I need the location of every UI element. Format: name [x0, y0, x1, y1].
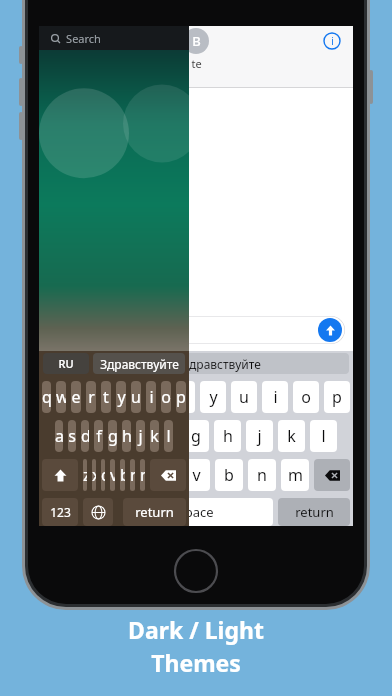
button[interactable]: Change keyboard	[83, 498, 113, 526]
button[interactable]: Здравствуйте	[93, 353, 185, 374]
staticText: 123	[50, 504, 71, 520]
button[interactable]: a	[55, 420, 63, 452]
staticText: Здравствуйте	[100, 356, 179, 372]
button[interactable]: z	[83, 459, 87, 491]
staticText: i	[273, 386, 278, 408]
button[interactable]: b	[120, 459, 125, 491]
staticText: f	[161, 425, 167, 447]
button[interactable]: RU	[43, 353, 89, 374]
button[interactable]: a	[55, 420, 81, 452]
button[interactable]: g	[182, 420, 209, 452]
button[interactable]: m	[140, 459, 145, 491]
button[interactable]: u	[131, 381, 141, 413]
button[interactable]: k	[278, 420, 305, 452]
button[interactable]: space	[118, 498, 273, 526]
button[interactable]: n	[130, 459, 135, 491]
staticText: m	[288, 464, 303, 486]
button[interactable]: l	[164, 420, 173, 452]
button[interactable]: 123	[42, 498, 78, 526]
button[interactable]: Здравствуйте	[93, 353, 349, 374]
button[interactable]: n	[248, 459, 276, 491]
staticText: RU	[58, 356, 74, 371]
button[interactable]: p	[176, 381, 186, 413]
button[interactable]: d	[118, 420, 145, 452]
button[interactable]: p	[324, 381, 350, 413]
button[interactable]: o	[293, 381, 319, 413]
button[interactable]: c	[149, 459, 177, 491]
button[interactable]: 123	[42, 498, 78, 526]
staticText: o	[301, 386, 311, 408]
button[interactable]: y	[116, 381, 126, 413]
button[interactable]: d	[81, 420, 89, 452]
button[interactable]: Send	[318, 318, 342, 342]
button[interactable]: i	[262, 381, 288, 413]
staticText: l	[166, 425, 171, 447]
button[interactable]: j	[136, 420, 145, 452]
button[interactable]: y	[200, 381, 226, 413]
button[interactable]: return	[123, 498, 186, 526]
button[interactable]: r	[138, 381, 164, 413]
button[interactable]: t	[101, 381, 111, 413]
staticText: space	[178, 503, 214, 521]
staticText: i	[149, 386, 154, 408]
button[interactable]: w	[74, 381, 101, 413]
button[interactable]: q	[42, 381, 69, 413]
staticText: f	[96, 425, 102, 447]
button[interactable]: b	[215, 459, 243, 491]
button[interactable]: Shift	[42, 459, 78, 491]
button[interactable]: h	[122, 420, 131, 452]
staticText: z	[83, 464, 87, 486]
button[interactable]: Change keyboard	[83, 498, 113, 526]
button[interactable]: e	[71, 381, 81, 413]
button[interactable]: o	[161, 381, 171, 413]
button[interactable]: j	[246, 420, 273, 452]
button[interactable]: return	[278, 498, 350, 526]
button[interactable]: s	[68, 420, 76, 452]
button[interactable]: Home	[173, 548, 219, 594]
staticText: return	[295, 503, 334, 521]
button[interactable]: e	[106, 381, 133, 413]
staticText: q	[42, 386, 51, 408]
button[interactable]: v	[110, 459, 115, 491]
button[interactable]: q	[42, 381, 51, 413]
button[interactable]	[47, 316, 345, 344]
button[interactable]: Backspace	[150, 459, 186, 491]
staticText: i	[331, 34, 334, 48]
button[interactable]: z	[83, 459, 111, 491]
button[interactable]: RU	[43, 353, 89, 374]
staticText: d	[127, 425, 137, 447]
button[interactable]: Backspace	[314, 459, 350, 491]
button[interactable]: x	[116, 459, 144, 491]
staticText: l	[321, 425, 326, 447]
staticText: Dark / Light	[128, 614, 264, 645]
staticText: a	[64, 425, 73, 447]
button[interactable]: r	[86, 381, 96, 413]
button[interactable]: f	[94, 420, 103, 452]
button[interactable]: Search	[39, 26, 189, 50]
button[interactable]: s	[86, 420, 113, 452]
button[interactable]: l	[310, 420, 337, 452]
button[interactable]: Shift	[42, 459, 78, 491]
button[interactable]: m	[281, 459, 309, 491]
staticText: j	[138, 425, 143, 447]
button[interactable]: w	[56, 381, 66, 413]
staticText: z	[93, 464, 101, 486]
button[interactable]: Info	[319, 28, 345, 54]
staticText: b	[120, 464, 125, 486]
staticText: u	[131, 386, 141, 408]
staticText: Search	[66, 31, 101, 46]
button[interactable]: t	[169, 381, 195, 413]
staticText: w	[56, 386, 66, 408]
button[interactable]: i	[146, 381, 156, 413]
button[interactable]: f	[150, 420, 177, 452]
staticText: x	[126, 464, 135, 486]
button[interactable]: k	[150, 420, 159, 452]
button[interactable]: x	[92, 459, 96, 491]
staticText: k	[150, 425, 159, 447]
button[interactable]: g	[108, 420, 117, 452]
button[interactable]: h	[214, 420, 241, 452]
staticText: RU	[58, 356, 74, 371]
button[interactable]: c	[101, 459, 105, 491]
button[interactable]: u	[231, 381, 257, 413]
button[interactable]: v	[182, 459, 210, 491]
